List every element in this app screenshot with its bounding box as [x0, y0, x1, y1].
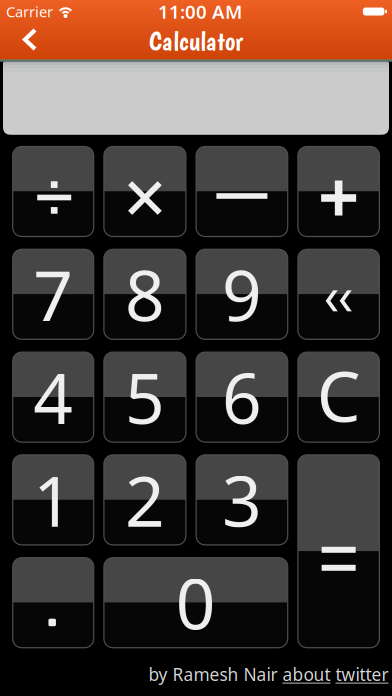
button[interactable]: Plus	[298, 146, 379, 236]
button[interactable]: about	[282, 663, 330, 686]
staticText: 8	[125, 248, 165, 340]
button[interactable]: 1	[13, 455, 94, 545]
button[interactable]: Decimal point	[13, 558, 94, 648]
staticText: Calculator	[149, 25, 243, 57]
staticText: 11:00 AM	[158, 0, 242, 24]
button[interactable]: 4	[13, 352, 94, 442]
button[interactable]: 7	[13, 249, 94, 339]
staticText: 9	[222, 248, 262, 340]
button[interactable]: 9	[196, 249, 288, 339]
button[interactable]: 0	[104, 558, 288, 648]
button[interactable]: Divide	[13, 146, 94, 236]
button[interactable]: 8	[104, 249, 186, 339]
staticText: Carrier	[6, 2, 53, 21]
button[interactable]: Minus	[196, 146, 288, 236]
staticText: 1	[33, 454, 73, 546]
staticText: C	[317, 349, 361, 441]
staticText: 4	[33, 351, 73, 443]
button[interactable]: Backspace	[298, 249, 379, 339]
button[interactable]: 6	[196, 352, 288, 442]
staticText: by Ramesh Nair	[148, 663, 282, 686]
button[interactable]: Equals	[298, 455, 379, 648]
staticText: about	[282, 663, 330, 686]
staticText: 2	[125, 454, 165, 546]
staticText: 5	[125, 351, 165, 443]
staticText	[330, 663, 335, 686]
staticText: 6	[222, 351, 262, 443]
button[interactable]: 3	[196, 455, 288, 545]
staticText: 0	[176, 557, 216, 649]
button[interactable]: Clear	[298, 352, 379, 442]
button[interactable]: Back	[0, 27, 37, 51]
staticText: twitter	[335, 663, 388, 686]
button[interactable]: Multiply	[104, 146, 186, 236]
button[interactable]: twitter	[335, 663, 388, 686]
button[interactable]: 5	[104, 352, 186, 442]
staticText: 7	[33, 248, 73, 340]
staticText: 3	[222, 454, 262, 546]
button[interactable]: 2	[104, 455, 186, 545]
